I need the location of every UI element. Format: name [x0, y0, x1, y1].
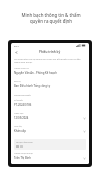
staticText: Thông tin phiếu [14, 94, 31, 97]
staticText: 9:41 [14, 44, 19, 47]
button[interactable]: Đơn vị [14, 80, 86, 91]
staticText: Phiếu trình ký [39, 50, 61, 54]
staticText: Người trình ký [14, 67, 29, 70]
button[interactable]: Mức độ [14, 125, 86, 136]
staticText: Đơn vị [14, 80, 21, 83]
button[interactable]: Ngày tạo [14, 112, 86, 123]
staticText: Trần Thị Bình [14, 156, 83, 160]
button[interactable]: Người nhận duyệt [14, 152, 86, 162]
staticText: Khẩn cấp [14, 129, 83, 133]
staticText: Người nhận duyệt [14, 152, 33, 155]
button[interactable]: Back [13, 49, 19, 55]
staticText: Ngày tạo [14, 112, 24, 115]
staticText: Ban Điều hành Tổng công ty [14, 84, 86, 88]
staticText: Minh bạch thông tin & thẩm quyền ra quyế… [21, 12, 81, 24]
staticText: Số phiếu [14, 99, 23, 102]
button[interactable]: Tài liệu đính kèm [14, 139, 86, 150]
staticText: PT-2024/0186 [14, 103, 86, 107]
staticText: Mức độ [14, 125, 22, 128]
button[interactable]: Số phiếu [14, 99, 86, 110]
staticText: Tài liệu đính kèm [16, 141, 33, 144]
staticText: Vui lòng kiểm tra lại thông tin trước kh… [14, 58, 86, 64]
staticText: Nguyễn Văn An - Phòng Kế hoạch [14, 71, 86, 75]
staticText: 12/05/2024 [14, 116, 83, 120]
button[interactable]: Người trình ký [14, 67, 86, 78]
